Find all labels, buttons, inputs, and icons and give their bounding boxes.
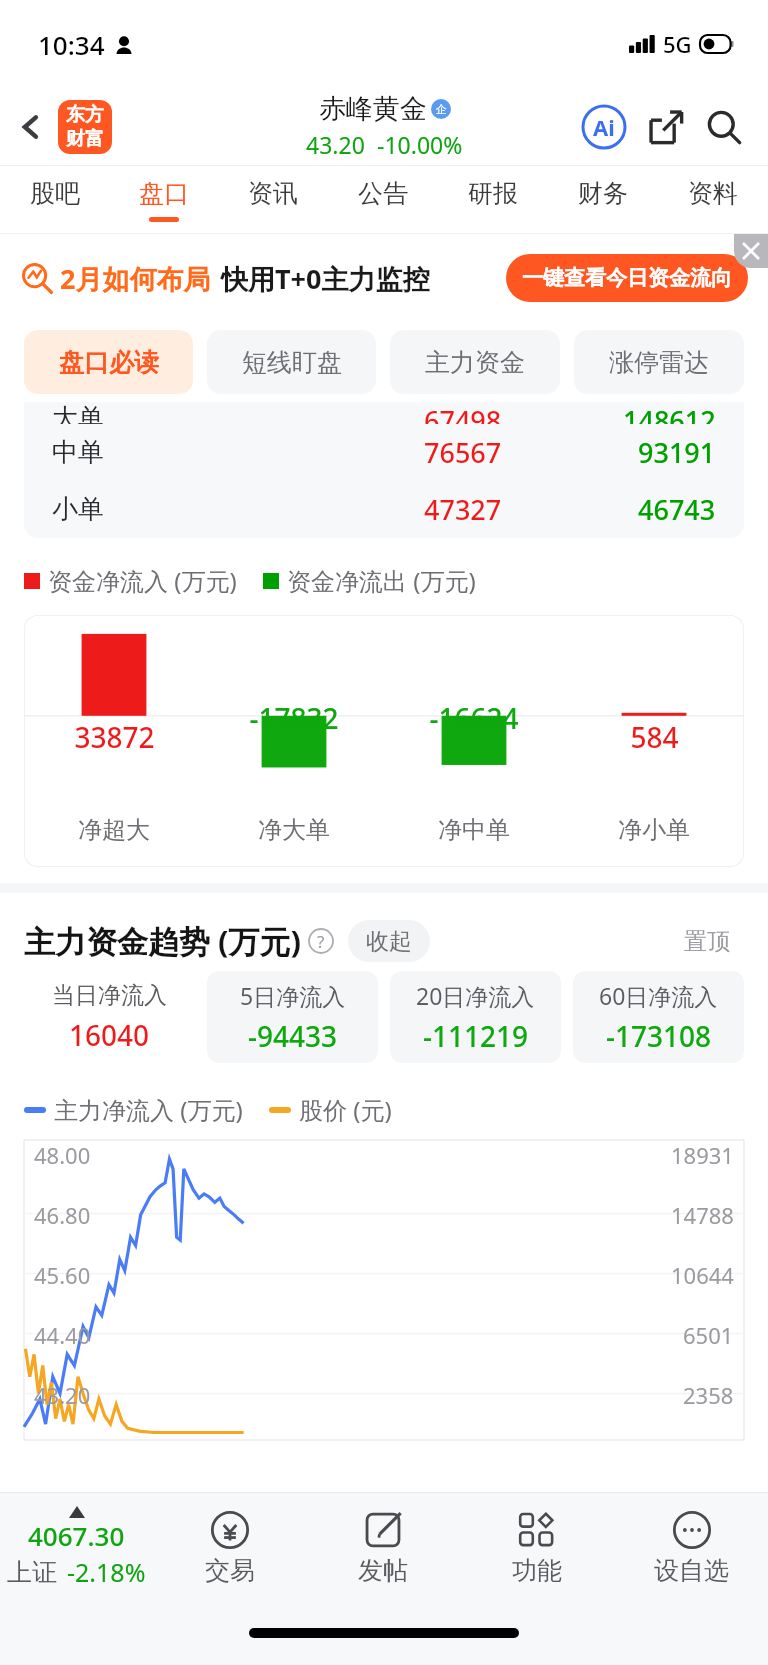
staticText: -2.18% <box>67 1555 146 1589</box>
button[interactable]: 置顶 <box>670 919 744 963</box>
staticText: ? <box>317 930 325 953</box>
button[interactable]: Help <box>308 928 334 954</box>
staticText: 功能 <box>512 1555 562 1586</box>
staticText: 10644 <box>671 1260 734 1290</box>
button[interactable]: 20日净流入 <box>390 971 561 1063</box>
staticText: 小单 <box>52 493 104 526</box>
button[interactable]: 功能 <box>460 1493 614 1601</box>
staticText: 18931 <box>671 1140 734 1170</box>
staticText: 47327 <box>424 491 502 528</box>
button[interactable]: Back <box>8 104 54 150</box>
staticText: 涨停雷达 <box>609 347 709 378</box>
button[interactable]: AI assistant <box>578 101 630 153</box>
staticText: 资金净流入 (万元) <box>48 564 237 597</box>
staticText: 93191 <box>638 434 716 471</box>
staticText: 主力资金趋势 (万元) <box>24 920 302 962</box>
staticText: 16040 <box>69 1016 150 1054</box>
button[interactable]: 研报 <box>438 166 548 234</box>
staticText: 净小单 <box>618 815 690 845</box>
staticText: 设自选 <box>654 1555 729 1586</box>
button[interactable]: 涨停雷达 <box>574 330 744 394</box>
staticText: -17832 <box>249 699 339 737</box>
staticText: 14788 <box>671 1200 734 1230</box>
staticText: 6501 <box>683 1320 734 1350</box>
staticText: 44.40 <box>34 1320 91 1350</box>
staticText: 主力净流入 (万元) <box>54 1093 243 1126</box>
staticText: 148612 <box>623 402 716 424</box>
staticText: -94433 <box>248 1017 338 1055</box>
button[interactable]: 股吧 <box>0 166 109 234</box>
staticText: 主力资金 <box>425 347 525 378</box>
staticText: 资料 <box>688 178 738 209</box>
staticText: 中单 <box>52 436 104 469</box>
staticText: Ai <box>593 112 615 142</box>
staticText: 45.60 <box>34 1260 91 1290</box>
staticText: 净大单 <box>258 815 330 845</box>
staticText: 研报 <box>468 178 518 209</box>
button[interactable]: 收起 <box>348 920 430 962</box>
staticText: 上证 <box>7 1557 57 1588</box>
staticText: 4067.30 <box>28 1518 125 1553</box>
staticText: 短线盯盘 <box>242 347 342 378</box>
button[interactable]: Search <box>698 101 750 153</box>
staticText: 48.00 <box>34 1140 91 1170</box>
staticText: 5日净流入 <box>240 980 346 1011</box>
staticText: -111219 <box>423 1017 529 1055</box>
button[interactable]: 盘口必读 <box>24 330 193 394</box>
staticText: 收起 <box>366 927 412 956</box>
staticText: 60日净流入 <box>599 980 718 1011</box>
staticText: 财务 <box>578 178 628 209</box>
staticText: 资讯 <box>248 178 298 209</box>
staticText: 43.20 <box>306 129 365 160</box>
button[interactable]: 交易 <box>153 1493 306 1601</box>
staticText: 盘口 <box>139 178 189 209</box>
button[interactable]: 盘口 <box>109 166 218 234</box>
staticText: 20日净流入 <box>416 980 535 1011</box>
staticText: -16624 <box>429 699 519 737</box>
button[interactable]: 发帖 <box>306 1493 460 1601</box>
staticText: 财富 <box>66 127 104 151</box>
button[interactable]: 财务 <box>548 166 658 234</box>
staticText: 发帖 <box>358 1555 408 1586</box>
staticText: 当日净流入 <box>52 981 167 1010</box>
staticText: 东方 <box>66 103 104 127</box>
button[interactable]: 设自选 <box>614 1493 768 1601</box>
staticText: -10.00% <box>377 129 463 160</box>
button[interactable]: East Money <box>58 100 112 154</box>
staticText: 2月如何布局 <box>60 260 211 297</box>
button[interactable]: 短线盯盘 <box>207 330 376 394</box>
button[interactable]: 主力资金 <box>390 330 560 394</box>
staticText: 交易 <box>205 1555 255 1586</box>
button[interactable]: Close <box>734 234 768 268</box>
staticText: 净超大 <box>78 815 150 845</box>
button[interactable]: 5日净流入 <box>207 971 378 1063</box>
staticText: 46.80 <box>34 1200 91 1230</box>
staticText: 67498 <box>424 402 502 424</box>
staticText: 赤峰黄金 <box>319 92 427 126</box>
button[interactable]: Share <box>640 101 692 153</box>
staticText: 46743 <box>638 491 716 528</box>
button[interactable]: 当日净流入 <box>24 971 195 1063</box>
button[interactable]: 60日净流入 <box>573 971 744 1063</box>
staticText: 5G <box>663 29 692 59</box>
button[interactable]: 公告 <box>328 166 438 234</box>
button[interactable]: 资讯 <box>218 166 328 234</box>
staticText: 股吧 <box>30 178 80 209</box>
staticText: 股价 (元) <box>299 1093 392 1126</box>
button[interactable]: 资料 <box>658 166 768 234</box>
staticText: 2358 <box>683 1380 734 1410</box>
staticText: 净中单 <box>438 815 510 845</box>
staticText: 盘口必读 <box>59 347 159 378</box>
button[interactable]: 一键查看今日资金流向 <box>506 254 748 302</box>
staticText: 公告 <box>358 178 408 209</box>
staticText: 584 <box>630 718 679 756</box>
staticText: -173108 <box>606 1017 712 1055</box>
staticText: 资金净流出 (万元) <box>287 564 476 597</box>
button[interactable]: 4067.30 <box>0 1493 153 1601</box>
staticText: 快用T+0主力监控 <box>221 260 430 297</box>
staticText: 置顶 <box>684 927 730 956</box>
staticText: 76567 <box>424 434 502 471</box>
staticText: 企 <box>436 102 447 116</box>
staticText: 10:34 <box>38 27 105 62</box>
staticText: 一键查看今日资金流向 <box>522 265 732 291</box>
